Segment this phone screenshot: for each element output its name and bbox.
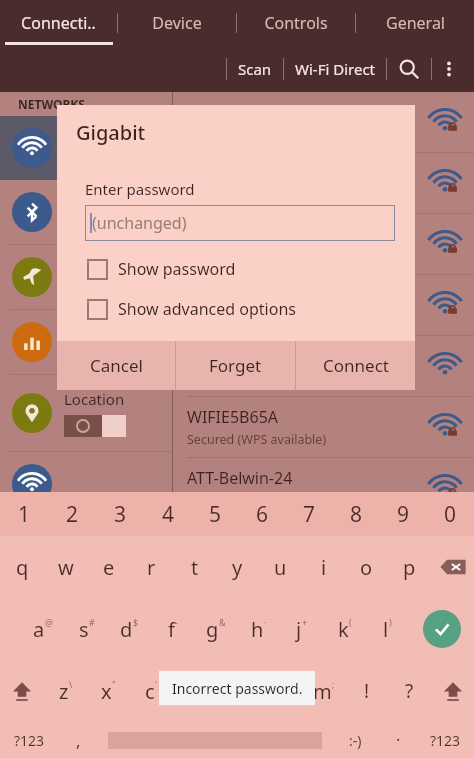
button[interactable]: WIFIE5B65A bbox=[173, 397, 474, 458]
button[interactable]: y bbox=[216, 536, 259, 598]
button[interactable]: 9 bbox=[380, 492, 427, 536]
button[interactable]: Shift bbox=[431, 660, 474, 722]
button[interactable]: c bbox=[130, 660, 173, 722]
button[interactable] bbox=[0, 452, 172, 516]
button[interactable]: ?123 bbox=[0, 722, 58, 758]
button[interactable]: dd-wrt bbox=[173, 336, 474, 397]
staticText: m bbox=[313, 678, 332, 705]
button[interactable]: h bbox=[237, 598, 280, 660]
button[interactable]: b bbox=[216, 660, 259, 722]
button[interactable]: e bbox=[87, 536, 130, 598]
staticText: Secured bbox=[187, 492, 235, 509]
button[interactable]: Gigabit bbox=[173, 92, 474, 153]
button[interactable]: m bbox=[302, 660, 345, 722]
button[interactable]: x bbox=[87, 660, 130, 722]
button[interactable]: Show advanced options bbox=[57, 291, 415, 327]
button[interactable]: 4 bbox=[144, 492, 192, 536]
button[interactable]: Connecti.. bbox=[0, 0, 117, 45]
staticText: General bbox=[386, 12, 445, 34]
staticText: 7 bbox=[303, 500, 316, 529]
button[interactable]: 6 bbox=[239, 492, 286, 536]
button[interactable]: 5 bbox=[192, 492, 239, 536]
button[interactable]: xfinitywifi bbox=[173, 519, 474, 580]
staticText: ( bbox=[349, 616, 352, 628]
button[interactable]: q bbox=[0, 536, 44, 598]
button[interactable]: v bbox=[173, 660, 216, 722]
button[interactable]: w bbox=[44, 536, 87, 598]
button[interactable]: · bbox=[380, 722, 416, 758]
button[interactable]: , bbox=[58, 722, 98, 758]
button[interactable]: Enter bbox=[409, 598, 474, 660]
staticText: q bbox=[16, 554, 29, 581]
button[interactable]: 2 bbox=[48, 492, 96, 536]
button[interactable]: r bbox=[130, 536, 173, 598]
button[interactable]: HOME-A1B2 bbox=[173, 153, 474, 214]
button[interactable]: k bbox=[323, 598, 366, 660]
button[interactable]: ! bbox=[345, 660, 388, 722]
button[interactable]: u bbox=[259, 536, 302, 598]
staticText: Connecti.. bbox=[21, 12, 96, 34]
staticText: h bbox=[251, 616, 264, 643]
button[interactable]: a bbox=[22, 598, 65, 660]
button[interactable]: Show password bbox=[57, 251, 415, 287]
staticText: :-) bbox=[349, 731, 362, 750]
staticText: 0 bbox=[444, 500, 457, 529]
button[interactable] bbox=[0, 180, 172, 244]
button[interactable] bbox=[0, 245, 172, 309]
button[interactable]: Connect bbox=[296, 341, 415, 390]
button[interactable]: Wi-Fi Direct bbox=[284, 45, 386, 92]
button[interactable]: 1 bbox=[0, 492, 48, 536]
button[interactable]: Controls bbox=[237, 0, 355, 45]
button[interactable]: 3 bbox=[96, 492, 144, 536]
button[interactable]: 8 bbox=[333, 492, 380, 536]
staticText: Open bbox=[187, 370, 220, 387]
button[interactable]: Space bbox=[98, 722, 331, 758]
staticText: & bbox=[219, 616, 226, 628]
button[interactable]: s bbox=[65, 598, 108, 660]
button[interactable]: l bbox=[366, 598, 409, 660]
staticText: c bbox=[145, 678, 155, 705]
staticText: Secured (WPS available) bbox=[187, 431, 327, 448]
button[interactable]: i bbox=[302, 536, 345, 598]
button[interactable]: (unchanged) bbox=[85, 205, 395, 241]
button[interactable]: General bbox=[356, 0, 474, 45]
button[interactable]: n bbox=[259, 660, 302, 722]
button[interactable]: j bbox=[280, 598, 323, 660]
button[interactable]: ? bbox=[388, 660, 431, 722]
staticText: Cancel bbox=[90, 354, 143, 377]
button[interactable]: Search bbox=[387, 47, 431, 91]
button[interactable]: More options bbox=[432, 52, 466, 86]
button[interactable]: NETGEAR52 bbox=[173, 214, 474, 275]
button[interactable]: Backspace bbox=[431, 536, 474, 598]
button[interactable]: t bbox=[173, 536, 216, 598]
button[interactable]: d bbox=[108, 598, 151, 660]
button[interactable] bbox=[0, 116, 172, 180]
button[interactable]: :-) bbox=[331, 722, 380, 758]
button[interactable]: g bbox=[194, 598, 237, 660]
staticText: ; bbox=[332, 678, 335, 690]
button[interactable]: 0 bbox=[427, 492, 474, 536]
staticText: , bbox=[76, 729, 81, 752]
button[interactable] bbox=[0, 310, 172, 374]
button[interactable]: Shift bbox=[0, 660, 44, 722]
button[interactable]: o bbox=[345, 536, 388, 598]
button[interactable]: Scan bbox=[227, 45, 283, 92]
button[interactable]: z bbox=[44, 660, 87, 722]
staticText: k bbox=[338, 616, 349, 643]
button[interactable]: f bbox=[151, 598, 194, 660]
button[interactable]: linksys_2G bbox=[173, 275, 474, 336]
staticText: 2 bbox=[66, 500, 79, 529]
staticText: · bbox=[396, 729, 401, 751]
button[interactable]: p bbox=[388, 536, 431, 598]
button[interactable]: Device bbox=[118, 0, 236, 45]
staticText: Secured bbox=[187, 309, 235, 326]
button[interactable]: ATT-Belwin-24 bbox=[173, 458, 474, 519]
button[interactable]: 7 bbox=[286, 492, 333, 536]
button[interactable]: ?123 bbox=[416, 722, 474, 758]
staticText: y bbox=[232, 554, 243, 581]
button[interactable]: Cancel bbox=[57, 341, 175, 390]
staticText: Wi-Fi Direct bbox=[295, 59, 375, 79]
button[interactable]: Location bbox=[0, 375, 172, 451]
button[interactable]: Forget bbox=[176, 341, 295, 390]
